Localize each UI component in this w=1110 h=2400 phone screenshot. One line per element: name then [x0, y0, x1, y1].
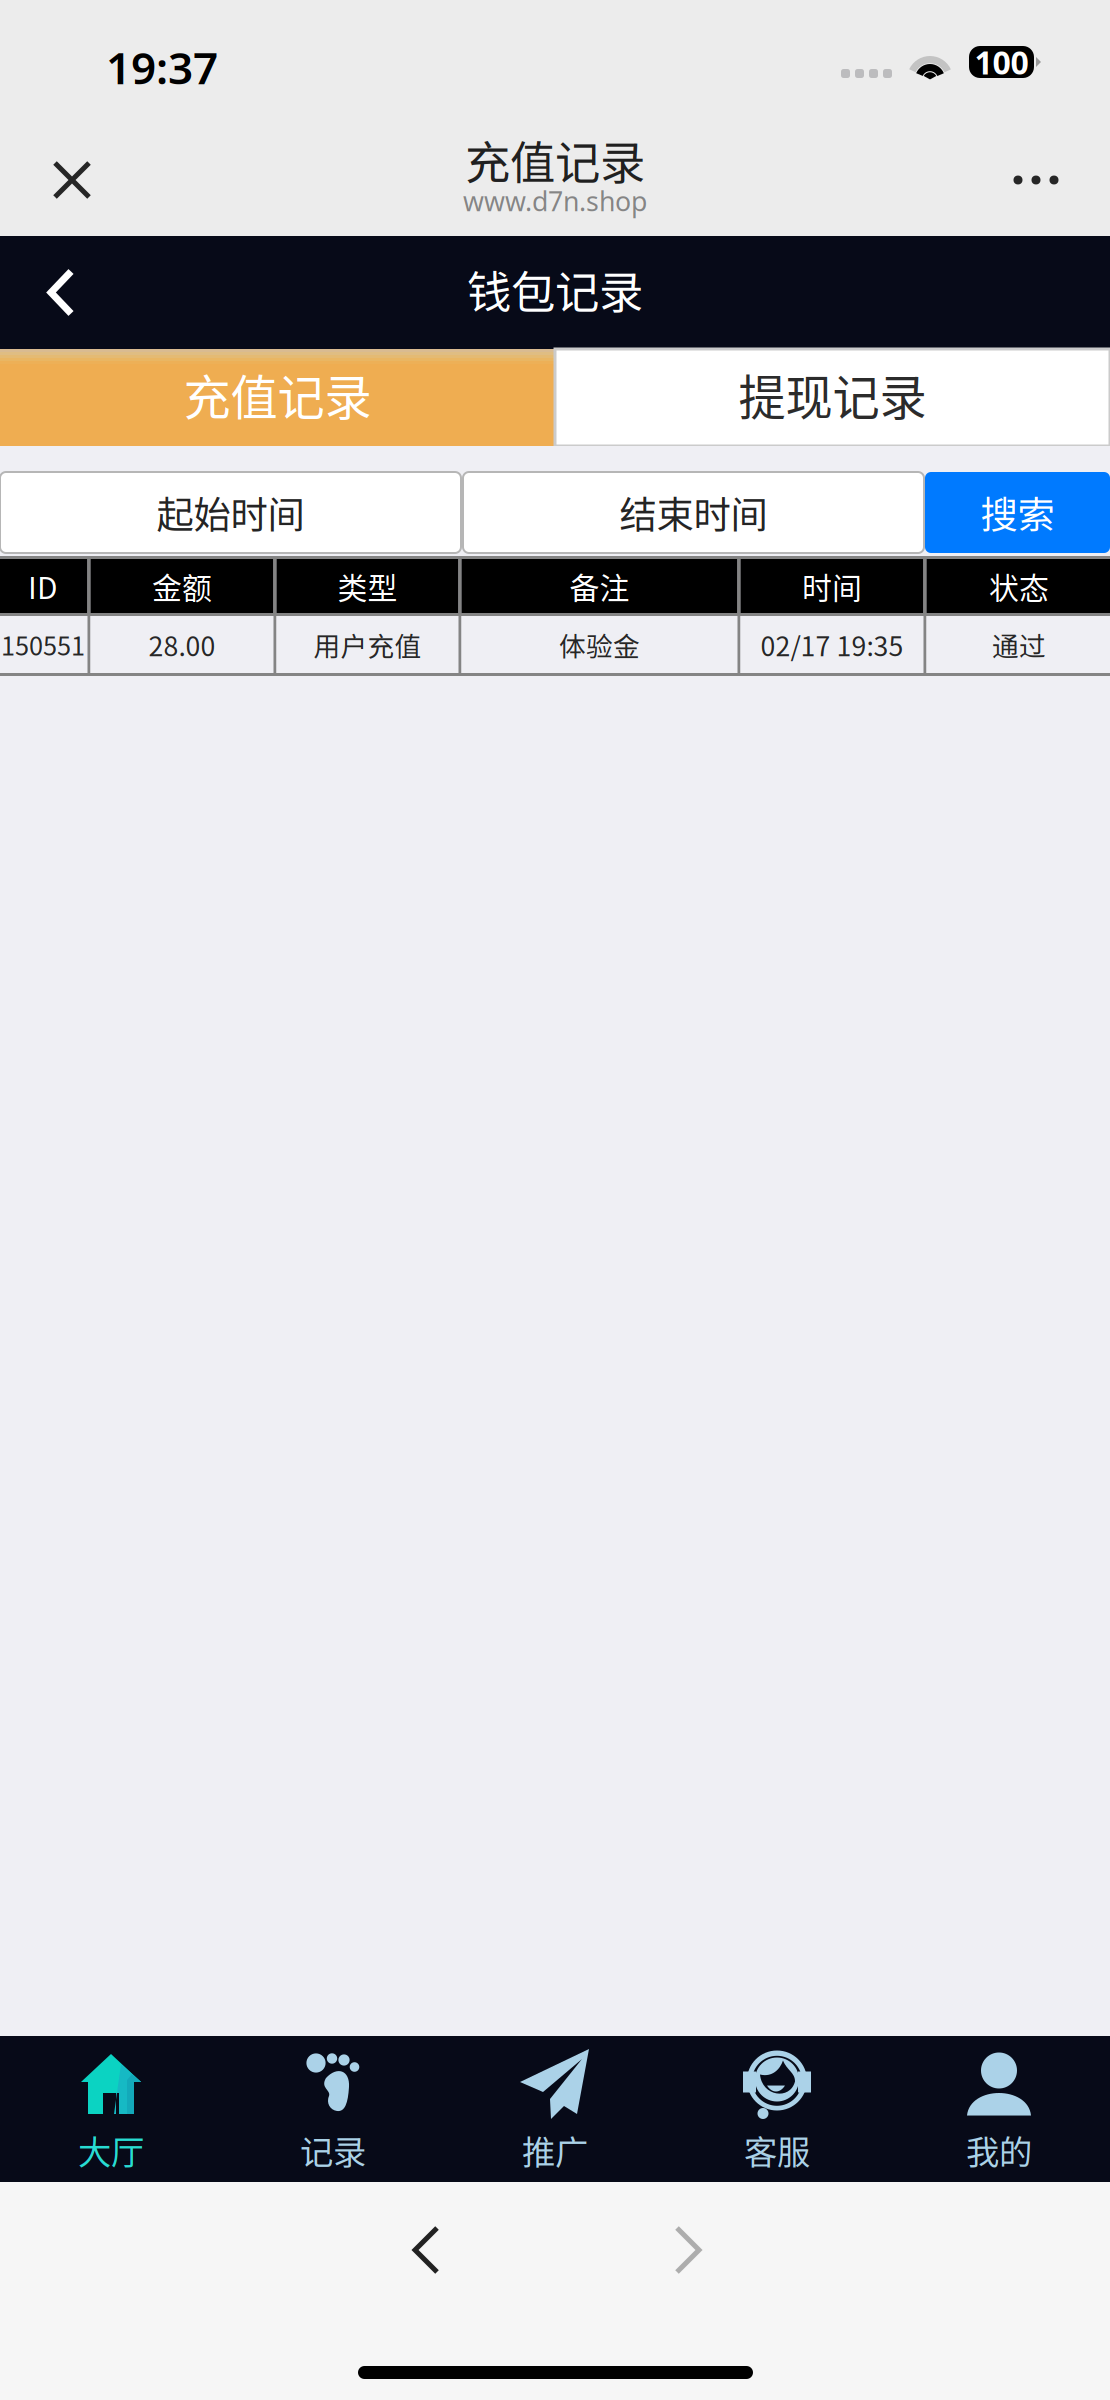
- staticText: 备注: [569, 564, 629, 608]
- staticText: 状态: [989, 564, 1049, 608]
- staticText: 推广: [522, 2126, 588, 2174]
- button[interactable]: More: [972, 121, 1100, 239]
- staticText: 搜索: [980, 485, 1054, 540]
- button[interactable]: 大厅: [0, 2036, 222, 2182]
- button[interactable]: Back: [0, 236, 122, 349]
- staticText: 02/17 19:35: [760, 625, 903, 664]
- staticText: 150551: [1, 626, 85, 663]
- button[interactable]: Forward: [632, 2194, 744, 2306]
- staticText: 提现记录: [738, 360, 926, 429]
- staticText: 充值记录: [465, 127, 645, 193]
- staticText: 时间: [802, 564, 862, 608]
- staticText: 客服: [744, 2126, 810, 2174]
- button[interactable]: 记录: [222, 2036, 444, 2182]
- staticText: 用户充值: [313, 625, 421, 664]
- staticText: 19:37: [106, 38, 218, 96]
- button[interactable]: 我的: [888, 2036, 1110, 2182]
- staticText: 通过: [992, 625, 1046, 664]
- staticText: 金额: [152, 564, 212, 608]
- staticText: 记录: [300, 2126, 366, 2174]
- button[interactable]: 提现记录: [555, 349, 1110, 446]
- staticText: 结束时间: [619, 485, 767, 540]
- staticText: 100: [974, 41, 1028, 83]
- button[interactable]: Back: [370, 2194, 482, 2306]
- staticText: 体验金: [559, 625, 640, 664]
- staticText: 大厅: [78, 2126, 144, 2174]
- staticText: www.d7n.shop: [463, 183, 647, 219]
- staticText: 类型: [337, 564, 397, 608]
- button[interactable]: 推广: [444, 2036, 666, 2182]
- staticText: 充值记录: [183, 360, 371, 429]
- button[interactable]: 搜索: [925, 472, 1110, 553]
- staticText: 28.00: [148, 625, 215, 664]
- staticText: 起始时间: [156, 485, 304, 540]
- button[interactable]: 结束时间: [463, 472, 924, 553]
- button[interactable]: 客服: [666, 2036, 888, 2182]
- staticText: 钱包记录: [467, 257, 643, 322]
- staticText: ID: [28, 564, 58, 608]
- button[interactable]: Close: [17, 121, 127, 239]
- button[interactable]: 充值记录: [0, 349, 555, 446]
- button[interactable]: 起始时间: [0, 472, 461, 553]
- staticText: 我的: [966, 2126, 1032, 2174]
